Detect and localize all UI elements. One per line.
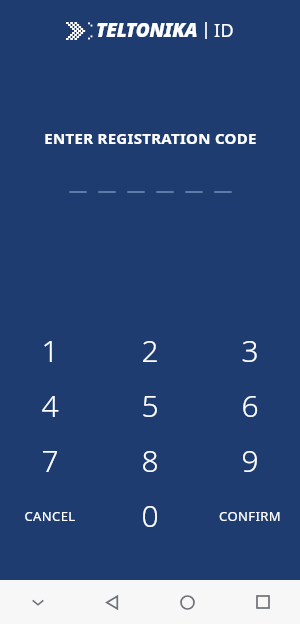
staticText: TELTONIKA [96, 17, 198, 43]
button[interactable]: 0 [100, 488, 200, 543]
staticText: 6 [241, 385, 259, 426]
button[interactable]: Home [150, 580, 225, 624]
staticText: 1 [41, 330, 59, 371]
button[interactable]: 8 [100, 433, 200, 488]
staticText: 0 [141, 495, 159, 536]
staticText: CONFIRM [219, 507, 281, 525]
staticText: 2 [141, 330, 159, 371]
staticText: 7 [41, 440, 59, 481]
staticText: 3 [241, 330, 259, 371]
button[interactable]: 9 [200, 433, 300, 488]
staticText: 5 [141, 385, 159, 426]
button[interactable]: Recents [225, 580, 300, 624]
button[interactable]: 7 [0, 433, 100, 488]
staticText: 9 [241, 440, 259, 481]
button[interactable]: 3 [200, 323, 300, 378]
staticText: CANCEL [24, 507, 76, 525]
button[interactable]: CANCEL [0, 488, 100, 543]
button[interactable]: 5 [100, 378, 200, 433]
button[interactable]: 2 [100, 323, 200, 378]
button[interactable]: CONFIRM [200, 488, 300, 543]
staticText: ID [214, 18, 235, 43]
button[interactable]: Back [75, 580, 150, 624]
button[interactable]: Hide keyboard [0, 580, 75, 624]
staticText: 4 [41, 385, 59, 426]
button[interactable]: 6 [200, 378, 300, 433]
staticText: 8 [141, 440, 159, 481]
button[interactable]: 1 [0, 323, 100, 378]
button[interactable]: 4 [0, 378, 100, 433]
staticText: ENTER REGISTRATION CODE [44, 128, 257, 148]
